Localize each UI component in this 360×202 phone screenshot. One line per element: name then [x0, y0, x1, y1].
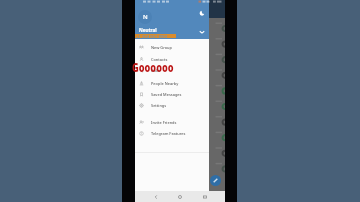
button[interactable]: Expand account list [198, 28, 206, 36]
staticText: Telegram Features [151, 131, 186, 136]
staticText: +1 234 567 8901 [136, 34, 169, 40]
button[interactable]: New message [210, 175, 221, 186]
button[interactable]: People Nearby [135, 77, 209, 89]
button[interactable]: Contacts [135, 53, 209, 65]
button[interactable]: Saved Messages [135, 88, 209, 100]
staticText: Saved Messages [151, 92, 182, 97]
staticText: People Nearby [151, 81, 179, 86]
button[interactable]: New Group [135, 41, 209, 53]
staticText: Goooooo [132, 59, 174, 76]
button[interactable]: Recent apps [201, 193, 209, 201]
button[interactable]: Telegram Features [135, 127, 209, 139]
button[interactable]: Settings [135, 99, 209, 111]
button[interactable]: Profile photo [138, 10, 152, 24]
staticText: N [143, 13, 148, 21]
button[interactable]: Back [152, 193, 160, 201]
staticText: Contacts [151, 57, 168, 62]
button[interactable]: Calls [135, 64, 209, 76]
staticText: Settings [151, 103, 167, 108]
staticText: New Group [151, 45, 172, 50]
staticText: Calls [151, 68, 160, 73]
staticText: Invite Friends [151, 120, 177, 125]
button[interactable]: Toggle night mode [198, 9, 206, 17]
staticText: Neutral [139, 27, 157, 33]
button[interactable]: Invite Friends [135, 116, 209, 128]
button[interactable]: Home [176, 193, 184, 201]
